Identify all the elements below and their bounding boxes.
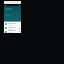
button[interactable] bbox=[4, 30, 21, 33]
button[interactable] bbox=[4, 26, 21, 30]
button[interactable] bbox=[4, 22, 21, 26]
